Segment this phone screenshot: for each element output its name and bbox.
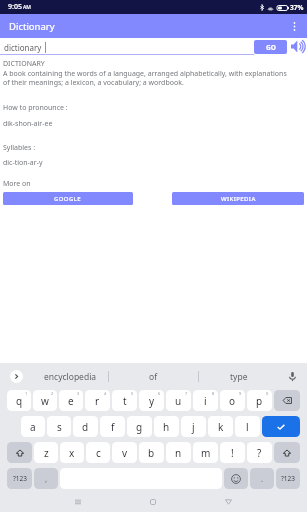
button[interactable]: Shift — [274, 442, 300, 463]
button[interactable]: GO — [254, 40, 287, 54]
button[interactable]: ? — [247, 442, 272, 463]
staticText: a — [30, 420, 36, 434]
button[interactable]: Backspace — [274, 390, 300, 411]
staticText: r — [95, 394, 100, 408]
staticText: q — [16, 394, 23, 408]
button[interactable]: x — [60, 442, 84, 463]
staticText: . — [261, 473, 264, 484]
button[interactable]: t — [112, 390, 137, 411]
button[interactable]: o — [220, 390, 245, 411]
button[interactable]: r — [85, 390, 110, 411]
button[interactable]: m — [193, 442, 218, 463]
staticText: y — [149, 394, 155, 408]
staticText: ? — [257, 446, 262, 460]
button[interactable]: Expand suggestions — [0, 363, 32, 390]
button[interactable]: w — [33, 390, 57, 411]
button[interactable]: Recents — [65, 491, 91, 512]
staticText: f — [111, 420, 115, 434]
button[interactable]: type — [199, 363, 278, 390]
button[interactable]: ?123 — [276, 468, 300, 489]
staticText: A book containing the words of a languag… — [3, 69, 287, 87]
staticText: v — [122, 446, 128, 460]
button[interactable]: , — [34, 468, 58, 489]
button[interactable]: Back — [215, 491, 241, 512]
staticText: g — [136, 420, 143, 434]
staticText: ?123 — [13, 474, 27, 483]
button[interactable]: of — [109, 363, 198, 390]
staticText: 4 — [104, 391, 107, 396]
staticText: Syllables : — [3, 143, 36, 153]
staticText: WIKIPEDIA — [221, 195, 256, 203]
staticText: How to pronounce : — [3, 103, 68, 113]
staticText: e — [68, 394, 74, 408]
button[interactable]: q — [7, 390, 31, 411]
staticText: c — [96, 446, 101, 460]
button[interactable]: WIKIPEDIA — [172, 192, 304, 205]
staticText: DICTIONARY — [3, 59, 45, 69]
button[interactable]: Shift — [7, 442, 32, 463]
button[interactable]: GOOGLE — [3, 192, 133, 205]
button[interactable]: z — [34, 442, 58, 463]
staticText: dic-tion-ar-y — [3, 158, 43, 168]
button[interactable]: Voice input — [278, 363, 307, 390]
staticText: of — [149, 371, 158, 383]
button[interactable]: dictionary — [0, 38, 254, 55]
button[interactable]: g — [127, 416, 152, 437]
staticText: Dictionary — [9, 20, 55, 33]
button[interactable]: s — [47, 416, 71, 437]
staticText: i — [204, 394, 207, 408]
button[interactable]: n — [166, 442, 191, 463]
staticText: k — [218, 420, 224, 434]
button[interactable]: Home — [140, 491, 166, 512]
staticText: w — [41, 394, 49, 408]
staticText: u — [175, 394, 182, 408]
button[interactable]: ?123 — [7, 468, 32, 489]
staticText: h — [163, 420, 170, 434]
staticText: type — [230, 371, 248, 383]
staticText: ?123 — [281, 474, 295, 483]
staticText: 9:05 — [8, 2, 22, 12]
button[interactable]: ! — [220, 442, 245, 463]
button[interactable]: Enter — [262, 416, 300, 437]
staticText: ! — [231, 446, 234, 460]
staticText: n — [175, 446, 182, 460]
button[interactable]: b — [139, 442, 164, 463]
button[interactable]: v — [112, 442, 137, 463]
staticText: t — [123, 394, 127, 408]
button[interactable]: Emoji — [224, 468, 248, 489]
staticText: o — [229, 394, 236, 408]
button[interactable]: a — [21, 416, 45, 437]
staticText: More on — [3, 179, 31, 189]
staticText: b — [148, 446, 155, 460]
staticText: d — [82, 420, 89, 434]
button[interactable]: f — [100, 416, 125, 437]
staticText: 2 — [51, 391, 54, 396]
staticText: AM — [23, 4, 31, 11]
staticText: dik-shon-air-ee — [3, 119, 53, 129]
button[interactable]: More options — [282, 14, 307, 38]
staticText: 8 — [212, 391, 215, 396]
button[interactable]: d — [73, 416, 98, 437]
button[interactable]: k — [208, 416, 233, 437]
button[interactable]: i — [193, 390, 218, 411]
staticText: z — [44, 446, 49, 460]
button[interactable]: j — [181, 416, 206, 437]
staticText: 9 — [239, 391, 242, 396]
button[interactable]: c — [86, 442, 110, 463]
staticText: p — [256, 394, 263, 408]
staticText: 1 — [25, 391, 28, 396]
button[interactable]: encyclopedia — [32, 363, 108, 390]
button[interactable]: Speak — [290, 38, 307, 55]
button[interactable]: p — [247, 390, 272, 411]
button[interactable]: l — [235, 416, 260, 437]
staticText: s — [57, 420, 62, 434]
button[interactable]: y — [139, 390, 164, 411]
button[interactable]: e — [59, 390, 83, 411]
button[interactable]: . — [250, 468, 274, 489]
staticText: , — [45, 473, 48, 484]
button[interactable]: u — [166, 390, 191, 411]
button[interactable]: h — [154, 416, 179, 437]
staticText: dictionary — [4, 42, 42, 53]
staticText: 0 — [266, 391, 269, 396]
